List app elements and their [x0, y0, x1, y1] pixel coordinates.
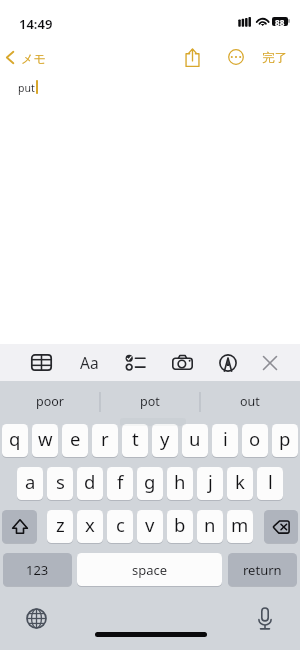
button[interactable]: p	[272, 424, 298, 457]
button[interactable]: h	[167, 467, 193, 500]
staticText: put	[18, 81, 35, 95]
button[interactable]: メモ	[3, 40, 49, 74]
staticText: i	[223, 426, 228, 451]
button[interactable]: q	[2, 424, 28, 457]
button[interactable]: v	[137, 510, 163, 543]
staticText: n	[204, 512, 216, 537]
button[interactable]: d	[77, 467, 103, 500]
staticText: return	[243, 561, 282, 579]
button[interactable]: u	[182, 424, 208, 457]
button[interactable]: out	[200, 381, 300, 415]
staticText: Aa	[80, 352, 99, 373]
staticText: m	[231, 512, 249, 537]
button[interactable]: 完了	[258, 40, 291, 74]
button[interactable]: c	[107, 510, 133, 543]
button[interactable]: poor	[0, 381, 100, 415]
staticText: a	[25, 469, 36, 494]
staticText: z	[56, 512, 65, 537]
staticText: p	[279, 426, 291, 451]
staticText: 14:49	[19, 15, 53, 33]
button[interactable]: Shift	[2, 510, 37, 543]
staticText: o	[249, 426, 261, 451]
button[interactable]: w	[32, 424, 58, 457]
staticText: k	[235, 469, 245, 494]
staticText: d	[84, 469, 96, 494]
button[interactable]: Close keyboard	[255, 344, 285, 381]
button[interactable]: pot	[100, 381, 200, 415]
button[interactable]: s	[47, 467, 73, 500]
staticText: メモ	[21, 51, 46, 66]
staticText: poor	[36, 393, 64, 410]
staticText: out	[240, 393, 260, 410]
button[interactable]: Markup	[213, 344, 243, 381]
button[interactable]: g	[137, 467, 163, 500]
staticText: x	[85, 512, 95, 537]
button[interactable]: m	[227, 510, 253, 543]
staticText: y	[160, 426, 170, 451]
button[interactable]: k	[227, 467, 253, 500]
button[interactable]: Insert table	[26, 344, 56, 381]
staticText: 123	[26, 561, 49, 579]
staticText: e	[70, 426, 81, 451]
staticText: j	[208, 469, 213, 494]
staticText: t	[132, 426, 139, 451]
button[interactable]: n	[197, 510, 223, 543]
button[interactable]: Share	[182, 40, 202, 74]
button[interactable]: 123	[3, 553, 72, 586]
staticText: 88	[275, 17, 285, 26]
staticText: q	[9, 426, 21, 451]
staticText: g	[144, 469, 156, 494]
staticText: pot	[140, 393, 160, 410]
button[interactable]: i	[212, 424, 238, 457]
staticText: 完了	[262, 50, 287, 66]
button[interactable]: a	[17, 467, 43, 500]
button[interactable]: l	[257, 467, 283, 500]
button[interactable]: Backspace	[264, 510, 298, 543]
staticText: b	[174, 512, 186, 537]
button[interactable]: f	[107, 467, 133, 500]
staticText: v	[145, 512, 155, 537]
button[interactable]: y	[152, 424, 178, 457]
button[interactable]: Text formatting	[74, 344, 104, 381]
staticText: r	[101, 426, 109, 451]
button[interactable]: o	[242, 424, 268, 457]
staticText: s	[56, 469, 65, 494]
button[interactable]: e	[62, 424, 88, 457]
staticText: h	[174, 469, 186, 494]
staticText: u	[189, 426, 201, 451]
button[interactable]: space	[77, 553, 222, 586]
button[interactable]: Change keyboard	[22, 604, 51, 633]
button[interactable]: More options	[226, 40, 245, 74]
button[interactable]: return	[228, 553, 297, 586]
button[interactable]: Dictation	[250, 604, 279, 633]
staticText: space	[132, 561, 168, 579]
staticText: c	[116, 512, 125, 537]
button[interactable]: z	[47, 510, 73, 543]
button[interactable]: r	[92, 424, 118, 457]
staticText: f	[117, 469, 124, 494]
button[interactable]: b	[167, 510, 193, 543]
staticText: w	[38, 426, 53, 451]
button[interactable]: Checklist	[120, 344, 150, 381]
button[interactable]: j	[197, 467, 223, 500]
button[interactable]: Camera	[167, 344, 197, 381]
button[interactable]: x	[77, 510, 103, 543]
button[interactable]: t	[122, 424, 148, 457]
staticText: l	[268, 469, 273, 494]
